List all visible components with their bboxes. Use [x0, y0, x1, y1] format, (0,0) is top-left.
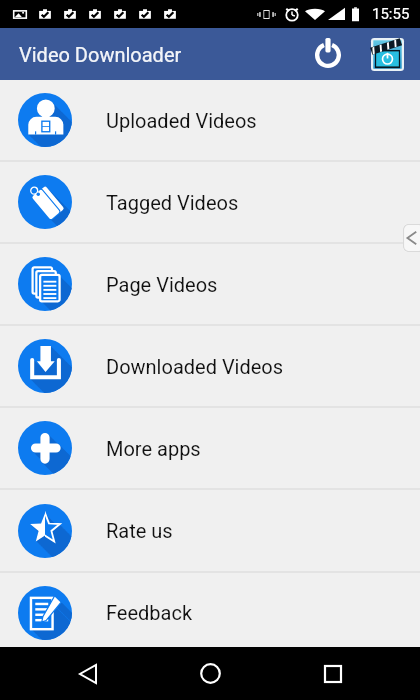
button[interactable]: Home [189, 652, 232, 695]
staticText: Feedback [106, 601, 193, 624]
button[interactable]: More apps [0, 408, 420, 488]
staticText: Video Downloader [19, 43, 182, 66]
button[interactable]: Feedback [0, 573, 420, 647]
staticText: Uploaded Videos [106, 109, 257, 132]
staticText: More apps [106, 437, 201, 460]
staticText: Rate us [106, 519, 173, 542]
button[interactable]: Exit [301, 30, 355, 78]
button[interactable]: Back [66, 652, 109, 695]
staticText: 15:55 [372, 5, 410, 23]
staticText: Page Videos [106, 273, 218, 296]
button[interactable]: Uploaded Videos [0, 80, 420, 160]
button[interactable]: Page Videos [0, 244, 420, 324]
button[interactable]: Open side panel [403, 224, 420, 252]
button[interactable]: Video app [371, 33, 404, 75]
button[interactable]: Recents [311, 652, 354, 695]
button[interactable]: Downloaded Videos [0, 326, 420, 406]
staticText: Tagged Videos [106, 191, 239, 214]
staticText: Downloaded Videos [106, 355, 284, 378]
button[interactable]: Rate us [0, 490, 420, 571]
button[interactable]: Tagged Videos [0, 162, 420, 242]
